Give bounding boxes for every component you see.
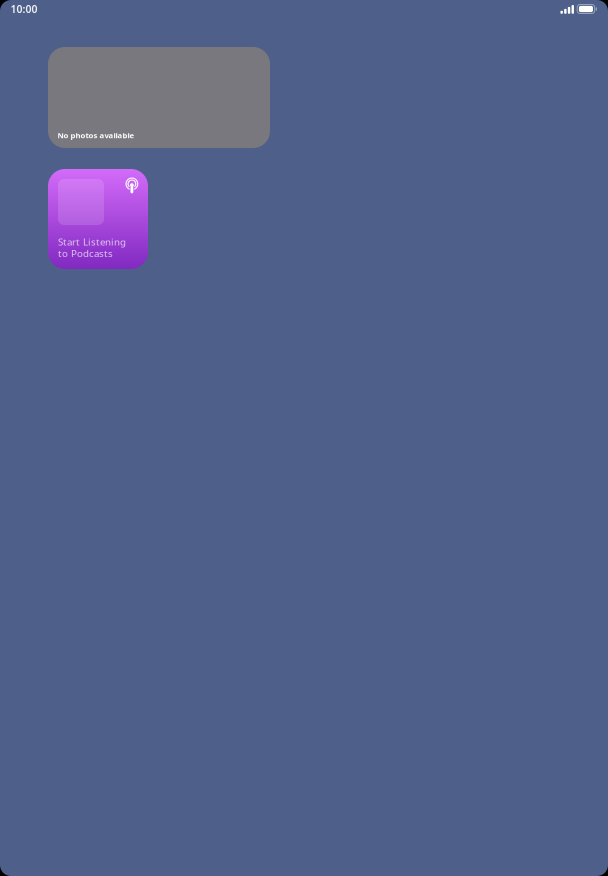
staticText: to Podcasts: [58, 247, 113, 260]
button[interactable]: Photos widget, no photos available: [48, 47, 270, 148]
button[interactable]: Start Listening to Podcasts: [48, 169, 148, 269]
staticText: No photos available: [57, 130, 134, 140]
staticText: Start Listening: [58, 235, 126, 248]
staticText: 10:00: [10, 2, 37, 16]
